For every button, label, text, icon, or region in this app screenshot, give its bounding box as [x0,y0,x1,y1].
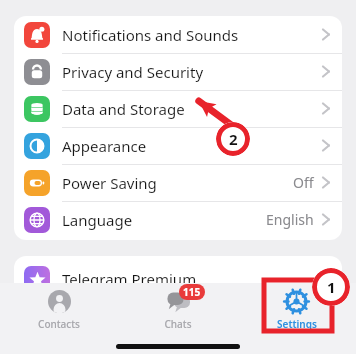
button[interactable]: Settings [237,283,356,334]
staticText: Appearance [62,136,147,156]
button[interactable]: Chats [118,283,237,334]
other: Chats [166,289,191,314]
button[interactable]: Contacts [0,283,118,334]
button[interactable]: Notifications and Sounds [14,16,342,53]
button[interactable]: Privacy and Security [14,53,342,90]
staticText: 1 [327,277,336,297]
button[interactable]: Appearance [14,127,342,164]
staticText: Notifications and Sounds [62,25,239,45]
staticText: 2 [229,129,238,149]
staticText: Off [293,173,314,192]
staticText: Contacts [38,317,80,331]
staticText: Telegram Premium [62,269,197,289]
button[interactable]: Data and Storage [14,90,342,127]
button[interactable]: Telegram Premium [14,256,342,302]
staticText: Privacy and Security [62,62,204,82]
staticText: Data and Storage [62,99,185,119]
staticText: English [266,210,314,229]
button[interactable]: Language [14,201,342,238]
staticText: Power Saving [62,173,157,193]
other: Settings [284,289,309,314]
staticText: Language [62,210,133,230]
staticText: 115 [183,285,201,299]
staticText: Settings [277,317,317,331]
button[interactable]: Power Saving [14,164,342,201]
staticText: Chats [164,317,192,331]
other: Contacts [47,289,72,314]
